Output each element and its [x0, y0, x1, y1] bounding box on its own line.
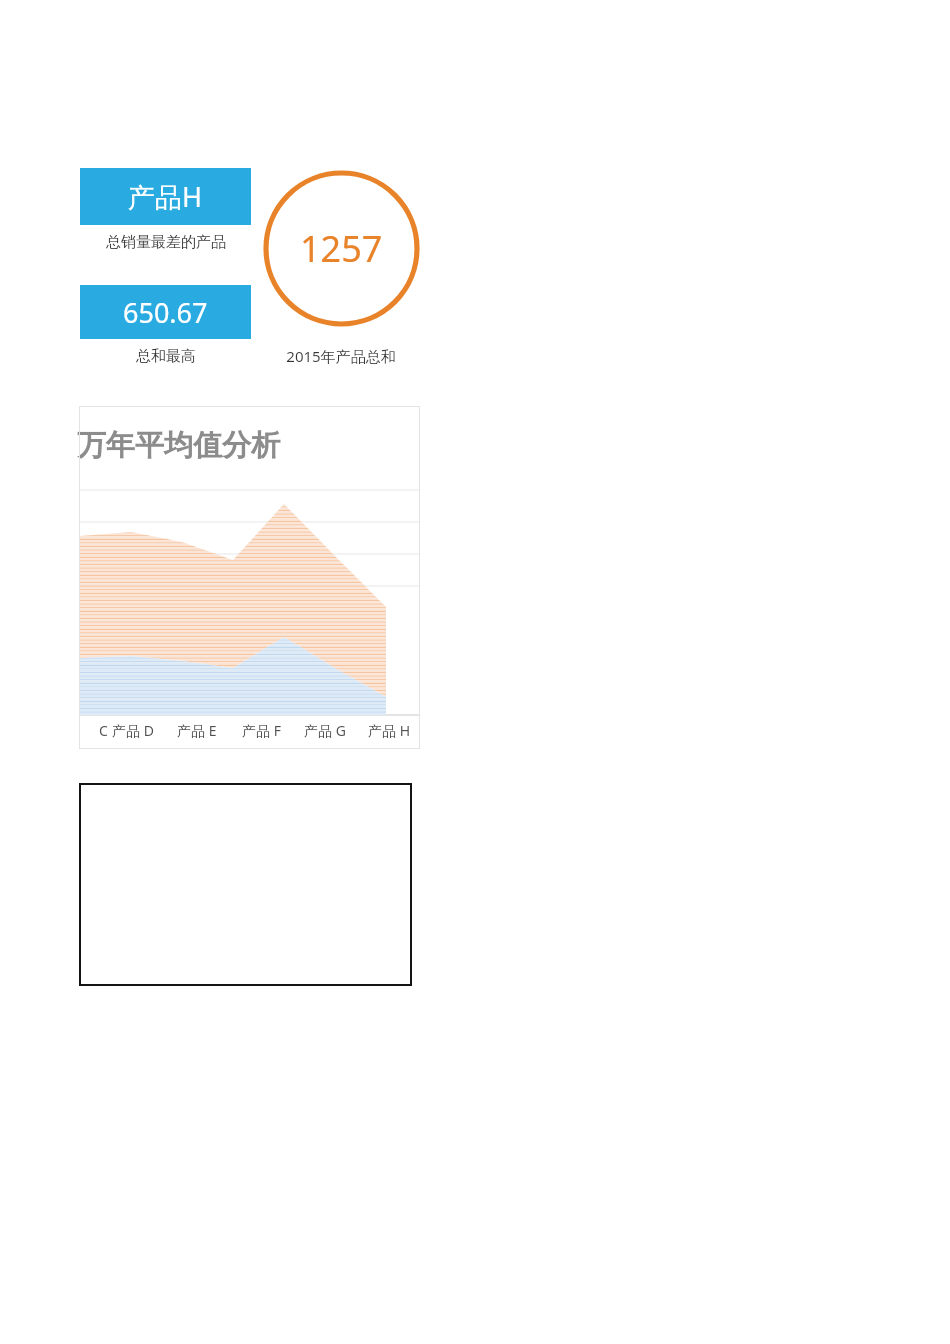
- staticText: 产品 G: [304, 721, 346, 740]
- button[interactable]: 万年平均值分析: [79, 406, 420, 749]
- staticText: 2015年产品总和: [286, 346, 396, 366]
- staticText: 650.67: [123, 294, 208, 331]
- staticText: 产品H: [128, 178, 203, 215]
- staticText: 产品 H: [368, 721, 411, 740]
- button[interactable]: 1257: [263, 170, 420, 327]
- staticText: 总销量最差的产品: [106, 233, 226, 252]
- staticText: 产品 E: [177, 721, 217, 740]
- staticText: 产品 D: [112, 721, 154, 740]
- button[interactable]: Empty detail panel: [79, 783, 412, 986]
- staticText: 1257: [300, 224, 383, 273]
- staticText: C: [99, 721, 108, 740]
- staticText: 产品 F: [242, 721, 281, 740]
- button[interactable]: 650.67: [80, 285, 251, 339]
- staticText: 万年平均值分析: [77, 427, 280, 464]
- staticText: 总和最高: [136, 347, 196, 366]
- button[interactable]: 产品H: [80, 168, 251, 225]
